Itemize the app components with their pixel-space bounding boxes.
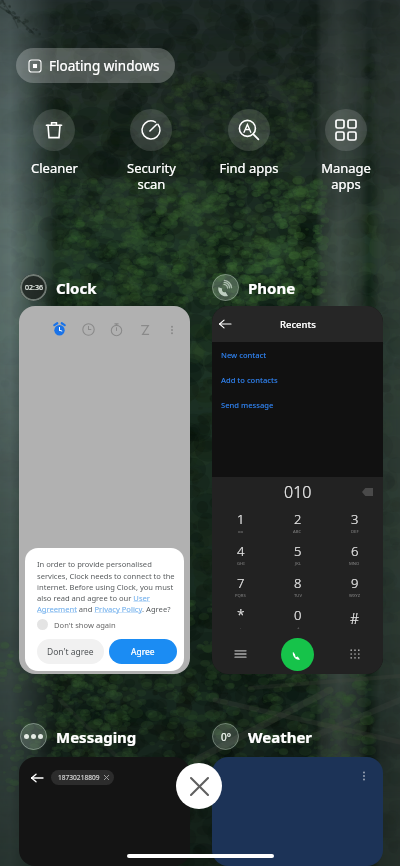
button[interactable]: Weather menu <box>359 771 369 781</box>
button[interactable]: More options <box>166 324 178 336</box>
button[interactable]: Call <box>281 638 314 671</box>
staticText: 18730218809 <box>58 773 100 782</box>
button[interactable]: World clock <box>82 323 95 336</box>
button[interactable]: Find apps <box>205 109 293 177</box>
button[interactable]: Don't show again <box>37 619 116 630</box>
button[interactable]: Close all <box>176 763 222 809</box>
staticText: 0° <box>221 730 231 744</box>
staticText: PQRS <box>235 593 246 599</box>
staticText: In order to provide personalised service… <box>37 559 179 614</box>
button[interactable]: Alarm <box>53 323 66 336</box>
staticText: 1 <box>237 510 245 528</box>
button[interactable]: Don't agree <box>37 639 104 664</box>
button[interactable]: Security scan <box>107 109 195 192</box>
button[interactable]: Back <box>19 757 190 866</box>
button[interactable]: Messaging <box>20 723 137 750</box>
button[interactable]: 02:36 <box>20 274 97 301</box>
button[interactable]: 2 <box>269 506 326 538</box>
staticText: 02:36 <box>25 283 43 293</box>
staticText: . <box>240 625 242 631</box>
button[interactable]: Add to contacts <box>221 375 278 385</box>
staticText: Clock <box>56 278 97 298</box>
staticText: MNO <box>349 561 360 567</box>
staticText: Security scan <box>127 159 176 192</box>
staticText: oo <box>238 529 244 535</box>
button[interactable]: 3 <box>326 506 383 538</box>
button[interactable]: Cleaner <box>10 109 98 177</box>
button[interactable]: 18730218809 <box>51 770 114 785</box>
staticText: Weather <box>248 727 313 747</box>
staticText: Don't show again <box>54 620 116 630</box>
staticText: 4 <box>237 542 245 560</box>
button[interactable]: Keypad <box>326 634 383 674</box>
staticText: 3 <box>351 510 359 528</box>
button[interactable]: 5 <box>269 538 326 570</box>
staticText: ABC <box>293 529 302 535</box>
button[interactable]: Phone <box>212 274 296 301</box>
staticText: Cleaner <box>31 159 78 177</box>
staticText: Agree <box>131 646 155 658</box>
staticText: 0 <box>294 606 302 624</box>
staticText: JKL <box>295 561 301 567</box>
button[interactable]: Weather menu <box>212 757 383 866</box>
staticText: 2 <box>294 510 302 528</box>
staticText: 010 <box>284 481 312 503</box>
button[interactable]: Timer <box>139 324 151 336</box>
staticText: # <box>350 609 360 628</box>
staticText: * <box>237 605 245 624</box>
staticText: Messaging <box>56 727 137 747</box>
button[interactable]: 8 <box>269 570 326 602</box>
button[interactable]: Alarm <box>19 306 190 674</box>
button[interactable]: Agree <box>109 639 177 664</box>
staticText: TUV <box>294 593 302 599</box>
staticText: Find apps <box>219 159 279 177</box>
button[interactable]: Send message <box>221 400 274 410</box>
staticText: Floating windows <box>49 57 160 75</box>
staticText: GHI <box>237 561 245 567</box>
button[interactable]: * <box>212 602 269 634</box>
button[interactable]: 1 <box>212 506 269 538</box>
button[interactable]: Manage apps <box>302 109 390 192</box>
staticText: WXYZ <box>349 593 361 599</box>
button[interactable]: Back <box>26 767 47 788</box>
staticText: 6 <box>351 542 359 560</box>
button[interactable]: 0° <box>212 723 313 750</box>
button[interactable]: Back <box>212 306 383 674</box>
button[interactable]: 6 <box>326 538 383 570</box>
staticText: 5 <box>294 542 302 560</box>
staticText: Manage apps <box>321 159 371 192</box>
button[interactable]: Options <box>212 634 269 674</box>
staticText: DEF <box>351 529 359 535</box>
staticText: 8 <box>294 574 302 592</box>
button[interactable]: Back <box>212 311 238 337</box>
button[interactable]: # <box>326 602 383 634</box>
staticText: 9 <box>351 574 359 592</box>
staticText: 7 <box>237 574 245 592</box>
button[interactable]: Stopwatch <box>110 323 123 336</box>
staticText: Don't agree <box>47 646 94 658</box>
staticText: Phone <box>248 278 296 298</box>
button[interactable]: 9 <box>326 570 383 602</box>
staticText: Recents <box>280 318 316 331</box>
button[interactable]: 0 <box>269 602 326 634</box>
button[interactable]: 7 <box>212 570 269 602</box>
staticText: + <box>297 625 300 631</box>
button[interactable]: New contact <box>221 350 267 360</box>
button[interactable]: Floating windows <box>16 48 175 83</box>
button[interactable]: 4 <box>212 538 269 570</box>
